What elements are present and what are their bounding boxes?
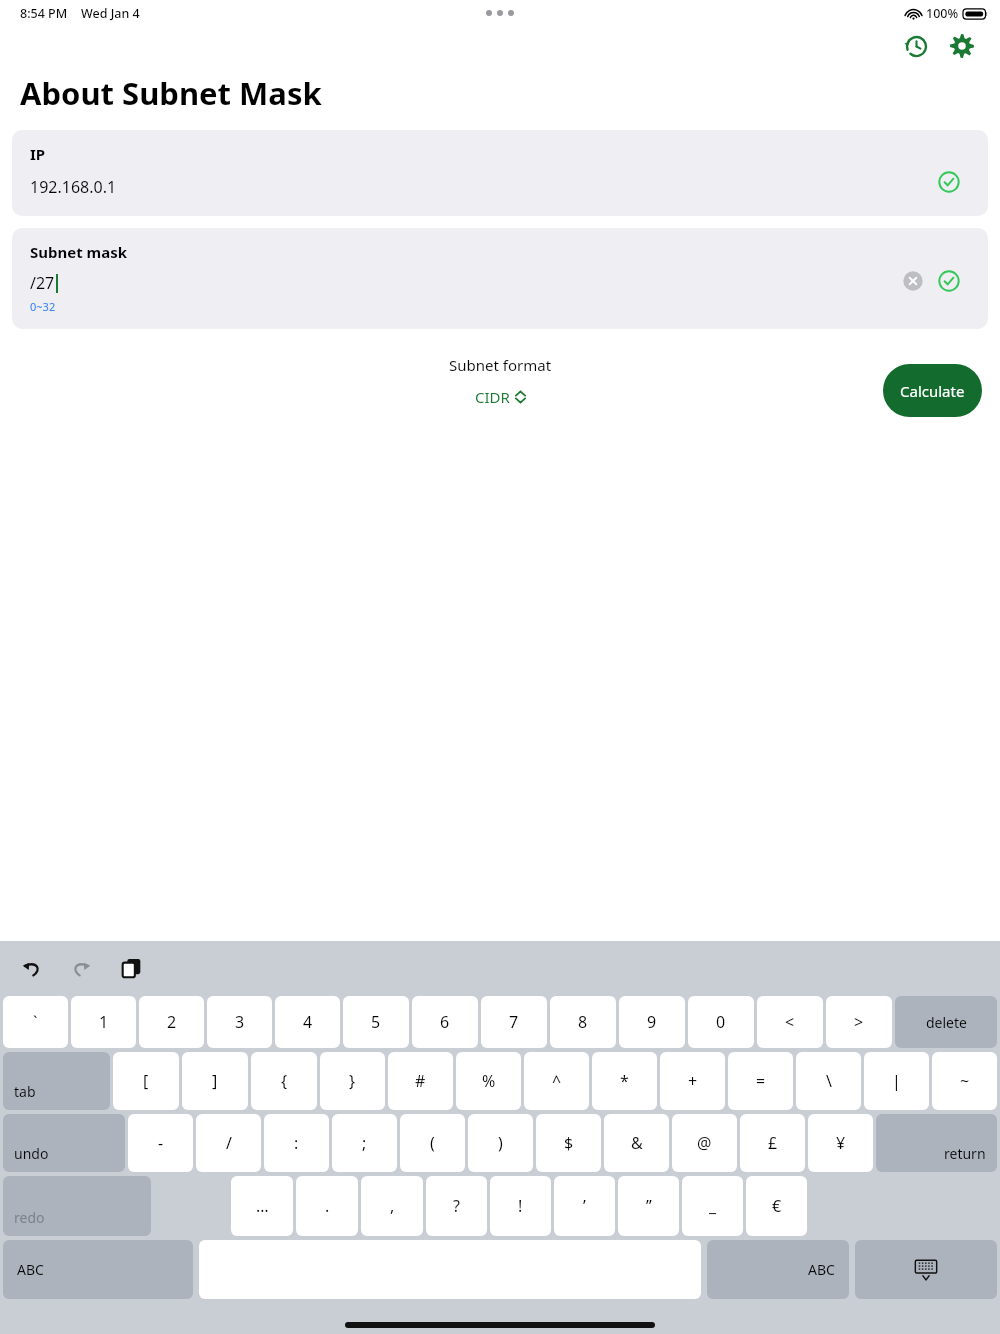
staticText: ¥	[836, 1132, 846, 1154]
button[interactable]: ?	[426, 1176, 487, 1236]
button[interactable]: Hide keyboard	[855, 1240, 997, 1299]
staticText: Subnet mask	[30, 242, 128, 262]
staticText: }	[349, 1070, 356, 1092]
button[interactable]: Subnet mask	[12, 228, 988, 329]
staticText: ^	[552, 1070, 562, 1092]
staticText: 0	[716, 1011, 726, 1033]
button[interactable]: return	[876, 1114, 997, 1172]
staticText: 8	[578, 1011, 588, 1033]
button[interactable]: ABC	[707, 1240, 849, 1299]
staticText: \	[826, 1070, 832, 1092]
button[interactable]: 8	[550, 996, 616, 1048]
staticText: ,	[390, 1195, 395, 1217]
button[interactable]: ]	[182, 1052, 248, 1110]
button[interactable]: Calculate	[883, 364, 982, 417]
staticText: -	[158, 1132, 164, 1154]
button[interactable]: Paste	[114, 951, 148, 985]
button[interactable]: !	[490, 1176, 551, 1236]
button[interactable]: @	[672, 1114, 737, 1172]
staticText: >	[854, 1011, 864, 1033]
button[interactable]: 5	[343, 996, 409, 1048]
button[interactable]: [	[113, 1052, 179, 1110]
button[interactable]: ABC	[3, 1240, 193, 1299]
staticText: :	[294, 1132, 299, 1154]
button[interactable]: -	[128, 1114, 193, 1172]
button[interactable]: |	[864, 1052, 929, 1110]
button[interactable]: …	[231, 1176, 293, 1236]
staticText: |	[892, 1070, 901, 1092]
button[interactable]: \	[796, 1052, 861, 1110]
staticText: _	[709, 1195, 717, 1217]
staticText: 3	[235, 1011, 245, 1033]
button[interactable]: }	[320, 1052, 385, 1110]
button[interactable]: redo	[3, 1176, 151, 1236]
button[interactable]: undo	[3, 1114, 125, 1172]
staticText: €	[772, 1195, 782, 1217]
button[interactable]: History	[896, 26, 936, 66]
button[interactable]: $	[536, 1114, 601, 1172]
button[interactable]: _	[682, 1176, 743, 1236]
button[interactable]: 6	[412, 996, 478, 1048]
button[interactable]: Settings	[942, 26, 982, 66]
staticText: About Subnet Mask	[20, 72, 322, 114]
button[interactable]: *	[592, 1052, 657, 1110]
button[interactable]: 2	[139, 996, 204, 1048]
staticText: ’	[583, 1195, 586, 1217]
button[interactable]: IP	[12, 130, 988, 216]
button[interactable]: ”	[618, 1176, 679, 1236]
button[interactable]: 7	[481, 996, 547, 1048]
button[interactable]: Undo	[14, 951, 48, 985]
staticText: ;	[362, 1132, 367, 1154]
button[interactable]: Redo	[64, 951, 98, 985]
button[interactable]: ,	[361, 1176, 423, 1236]
button[interactable]: ’	[554, 1176, 615, 1236]
button[interactable]: ~	[932, 1052, 997, 1110]
button[interactable]: ¥	[808, 1114, 873, 1172]
button[interactable]: delete	[895, 996, 997, 1048]
button[interactable]: 9	[619, 996, 685, 1048]
button[interactable]: £	[740, 1114, 805, 1172]
staticText: ~	[960, 1070, 970, 1092]
button[interactable]: <	[757, 996, 823, 1048]
button[interactable]: :	[264, 1114, 329, 1172]
button[interactable]: 1	[71, 996, 136, 1048]
button[interactable]: %	[456, 1052, 521, 1110]
button[interactable]: 4	[275, 996, 340, 1048]
staticText: *	[620, 1070, 629, 1092]
button[interactable]: )	[468, 1114, 533, 1172]
button[interactable]: &	[604, 1114, 669, 1172]
button[interactable]: ^	[524, 1052, 589, 1110]
button[interactable]: Subnet format	[449, 355, 552, 407]
button[interactable]: =	[728, 1052, 793, 1110]
staticText: <	[785, 1011, 795, 1033]
staticText: /27	[30, 272, 55, 294]
staticText: 1	[99, 1011, 109, 1033]
staticText: 5	[371, 1011, 381, 1033]
staticText: 7	[509, 1011, 519, 1033]
button[interactable]: >	[826, 996, 892, 1048]
button[interactable]: €	[746, 1176, 807, 1236]
button[interactable]: 3	[207, 996, 272, 1048]
staticText: undo	[14, 1144, 49, 1163]
button[interactable]: +	[660, 1052, 725, 1110]
button[interactable]: 0	[688, 996, 754, 1048]
button[interactable]: tab	[3, 1052, 110, 1110]
button[interactable]: (	[400, 1114, 465, 1172]
staticText: .	[325, 1195, 330, 1217]
button[interactable]: /	[196, 1114, 261, 1172]
staticText: IP	[30, 144, 46, 164]
button[interactable]: {	[251, 1052, 317, 1110]
button[interactable]: Clear	[898, 266, 928, 296]
staticText: ]	[212, 1070, 218, 1092]
button[interactable]: .	[296, 1176, 358, 1236]
button[interactable]: ;	[332, 1114, 397, 1172]
staticText: …	[256, 1195, 269, 1217]
button[interactable]: #	[388, 1052, 453, 1110]
button[interactable]: `	[3, 996, 68, 1048]
staticText: (	[430, 1132, 435, 1154]
staticText: Calculate	[900, 381, 965, 401]
staticText: CIDR	[475, 387, 510, 407]
staticText: @	[697, 1132, 712, 1154]
staticText: delete	[926, 1013, 967, 1032]
